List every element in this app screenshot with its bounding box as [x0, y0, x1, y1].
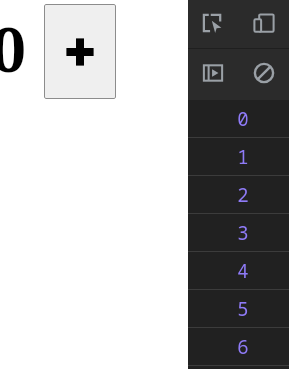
button[interactable]: 3: [188, 214, 289, 252]
button[interactable]: Inspect element: [188, 0, 238, 48]
button[interactable]: 5: [188, 290, 289, 328]
staticText: 2: [237, 182, 249, 208]
staticText: 1: [237, 144, 249, 170]
button[interactable]: 0: [188, 100, 289, 138]
button[interactable]: Toggle device toolbar: [238, 0, 289, 48]
button[interactable]: 4: [188, 252, 289, 290]
button[interactable]: 2: [188, 176, 289, 214]
staticText: 3: [237, 220, 249, 246]
staticText: 4: [237, 258, 249, 284]
button[interactable]: 1: [188, 138, 289, 176]
staticText: 5: [237, 296, 249, 322]
button[interactable]: Resume script execution: [188, 49, 238, 96]
staticText: 6: [237, 334, 249, 360]
staticText: 0: [0, 6, 27, 90]
button[interactable]: Increment: [44, 4, 116, 99]
button[interactable]: 6: [188, 328, 289, 366]
staticText: 0: [237, 106, 249, 132]
button[interactable]: Clear console: [238, 49, 289, 96]
